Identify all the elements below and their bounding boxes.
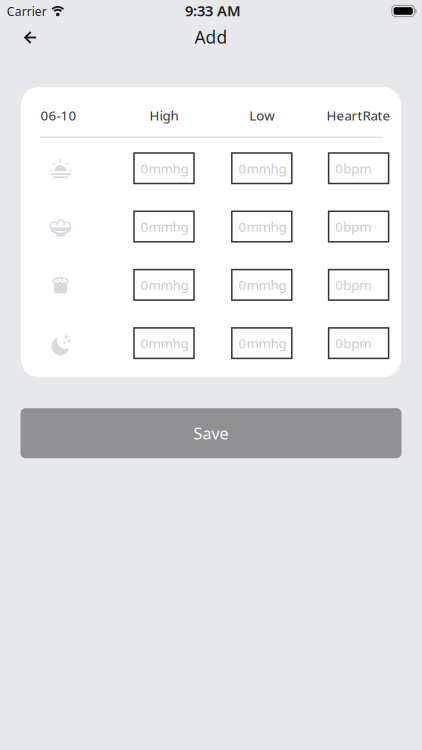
button[interactable]: 0mmhg	[134, 153, 194, 183]
staticText: 0mmhg	[238, 276, 286, 294]
button[interactable]: 0bpm	[329, 270, 389, 300]
button[interactable]: 0mmhg	[134, 270, 194, 300]
staticText: 0mmhg	[141, 218, 189, 235]
staticText: 0bpm	[335, 334, 371, 352]
button[interactable]: 0bpm	[329, 211, 389, 242]
button[interactable]: 0bpm	[329, 153, 389, 183]
button[interactable]: 0mmhg	[232, 211, 292, 242]
staticText: Carrier	[7, 3, 47, 19]
staticText: 0mmhg	[141, 334, 189, 352]
button[interactable]: 0mmhg	[232, 153, 292, 183]
staticText: 0bpm	[335, 218, 371, 235]
staticText: 9:33 AM	[185, 1, 241, 20]
staticText: 0bpm	[335, 276, 371, 294]
button[interactable]: 0bpm	[329, 328, 389, 358]
button[interactable]: Save	[20, 408, 401, 458]
staticText: HeartRate	[327, 106, 391, 124]
staticText: 0mmhg	[141, 159, 189, 177]
staticText: 0mmhg	[238, 218, 286, 235]
button[interactable]: 0mmhg	[232, 328, 292, 358]
staticText: 0mmhg	[238, 334, 286, 352]
button[interactable]: 0mmhg	[134, 211, 194, 242]
staticText: 0mmhg	[238, 159, 286, 177]
staticText: 06-10	[40, 106, 76, 124]
staticText: 0bpm	[335, 159, 371, 177]
button[interactable]: 0mmhg	[134, 328, 194, 358]
staticText: Add	[194, 25, 227, 48]
staticText: High	[149, 106, 178, 124]
button[interactable]: Back	[8, 17, 52, 57]
staticText: Low	[249, 106, 274, 124]
button[interactable]: 0mmhg	[232, 270, 292, 300]
staticText: 0mmhg	[141, 276, 189, 294]
staticText: Save	[193, 423, 228, 444]
